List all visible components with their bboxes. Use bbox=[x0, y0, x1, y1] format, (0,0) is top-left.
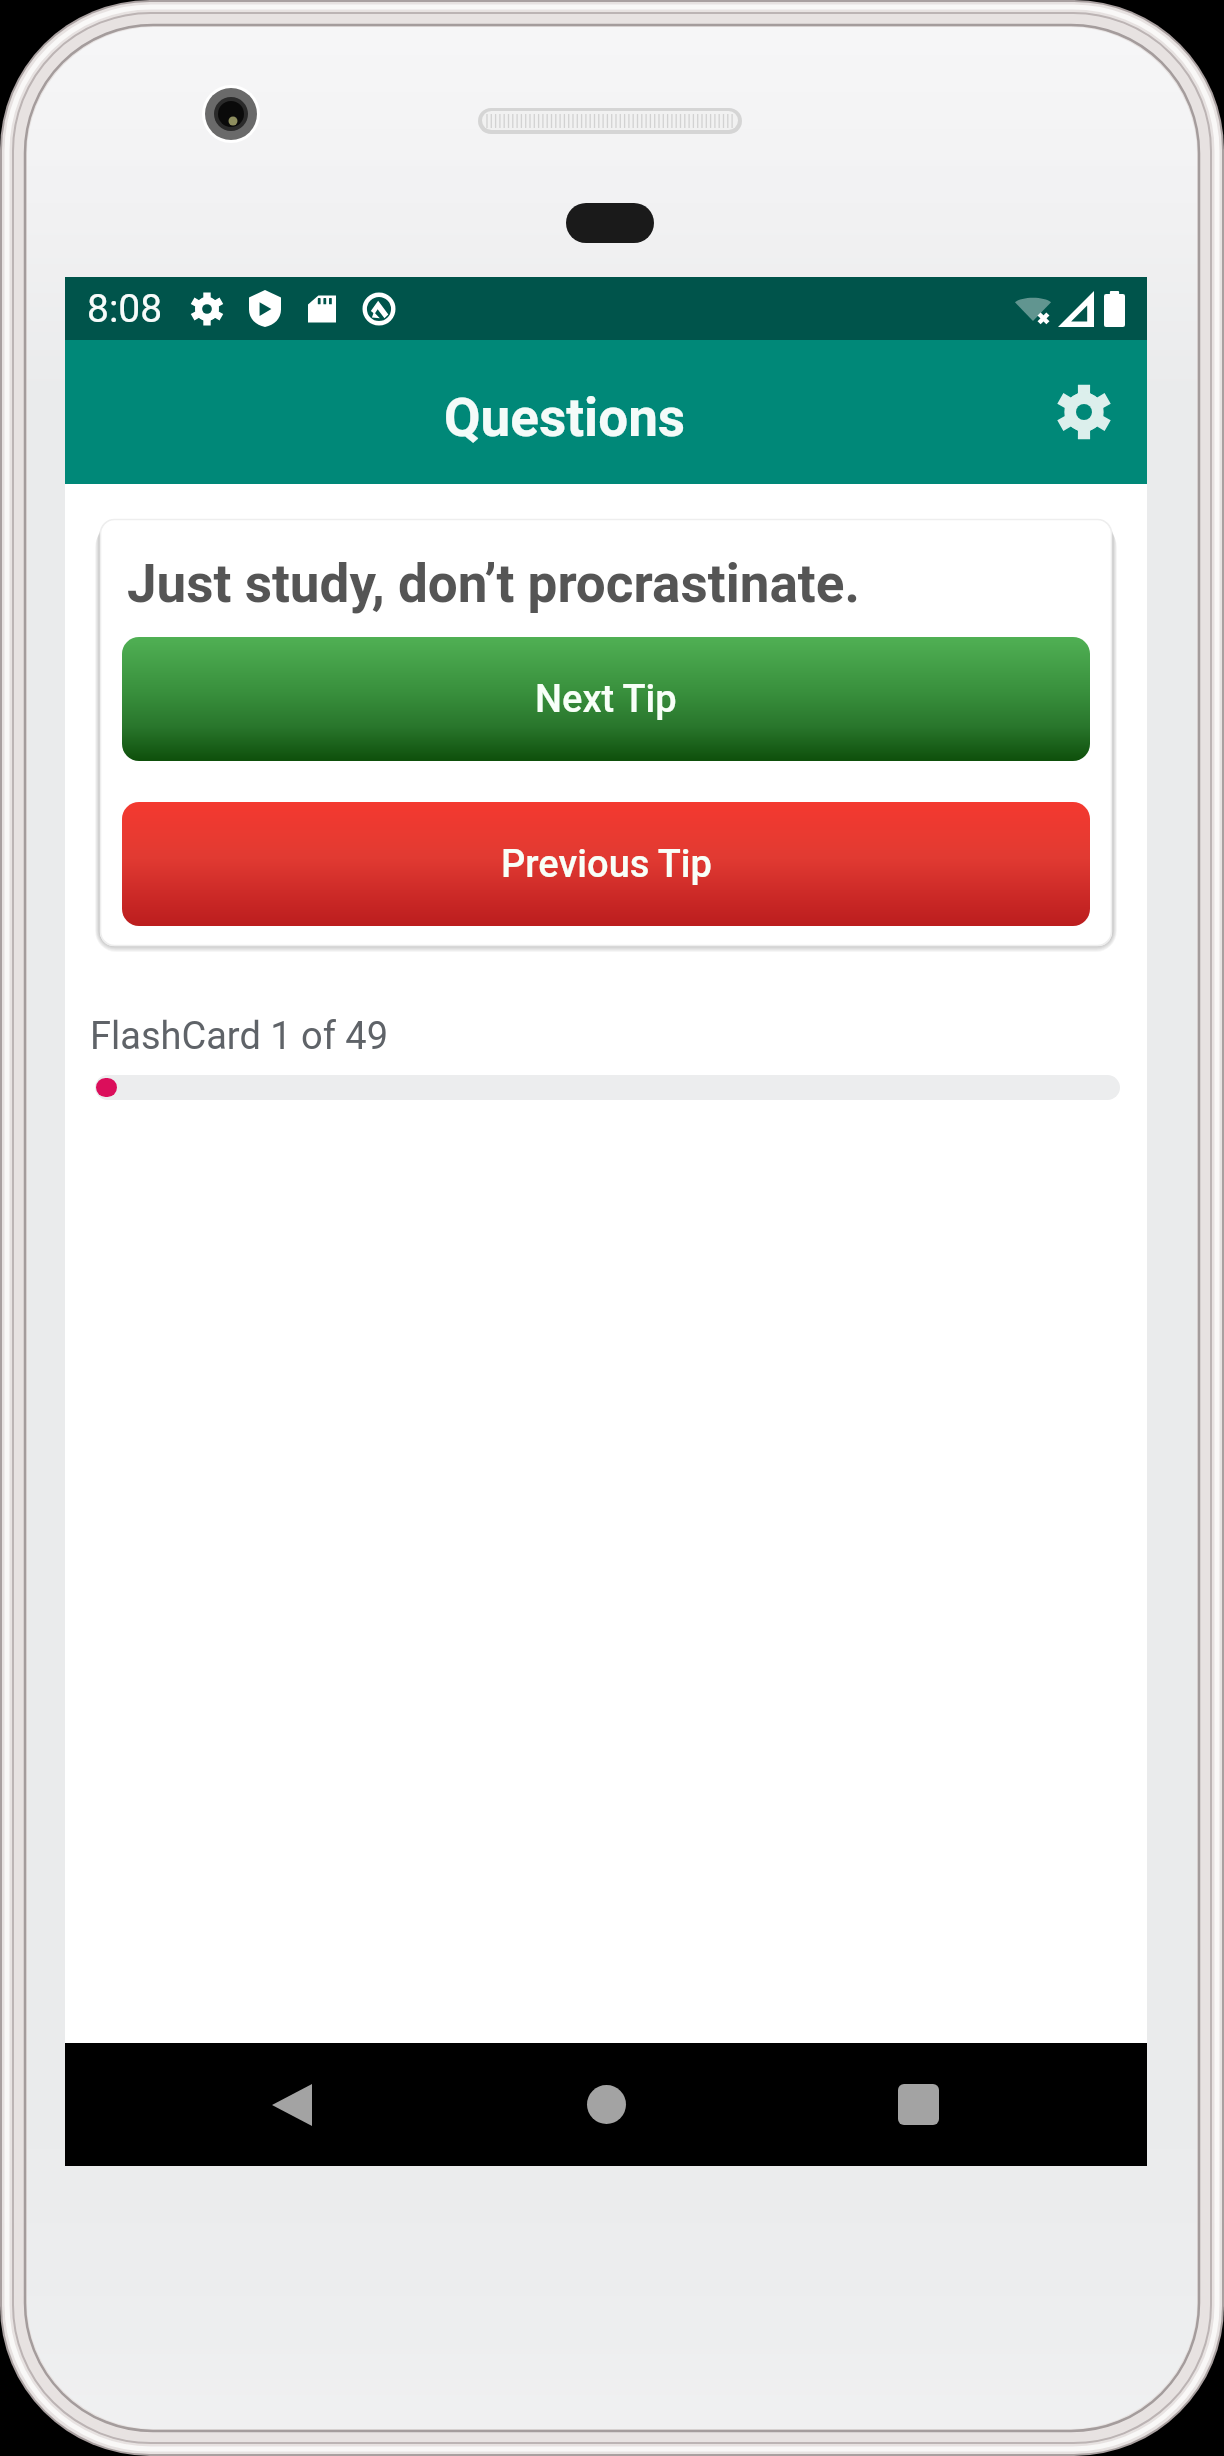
button[interactable]: Settings bbox=[1036, 364, 1132, 460]
button[interactable]: Recent apps bbox=[803, 2043, 1033, 2166]
button[interactable]: Back bbox=[177, 2043, 407, 2166]
staticText: Just study, don’t procrastinate. bbox=[127, 553, 860, 615]
button[interactable]: Home bbox=[491, 2043, 721, 2166]
staticText: Next Tip bbox=[535, 677, 677, 722]
staticText: Previous Tip bbox=[501, 842, 712, 887]
staticText: FlashCard 1 of 49 bbox=[90, 1014, 389, 1059]
staticText: 8:08 bbox=[87, 286, 163, 332]
button[interactable]: Previous Tip bbox=[122, 802, 1090, 926]
button[interactable]: Next Tip bbox=[122, 637, 1090, 761]
staticText: Questions bbox=[444, 387, 686, 449]
